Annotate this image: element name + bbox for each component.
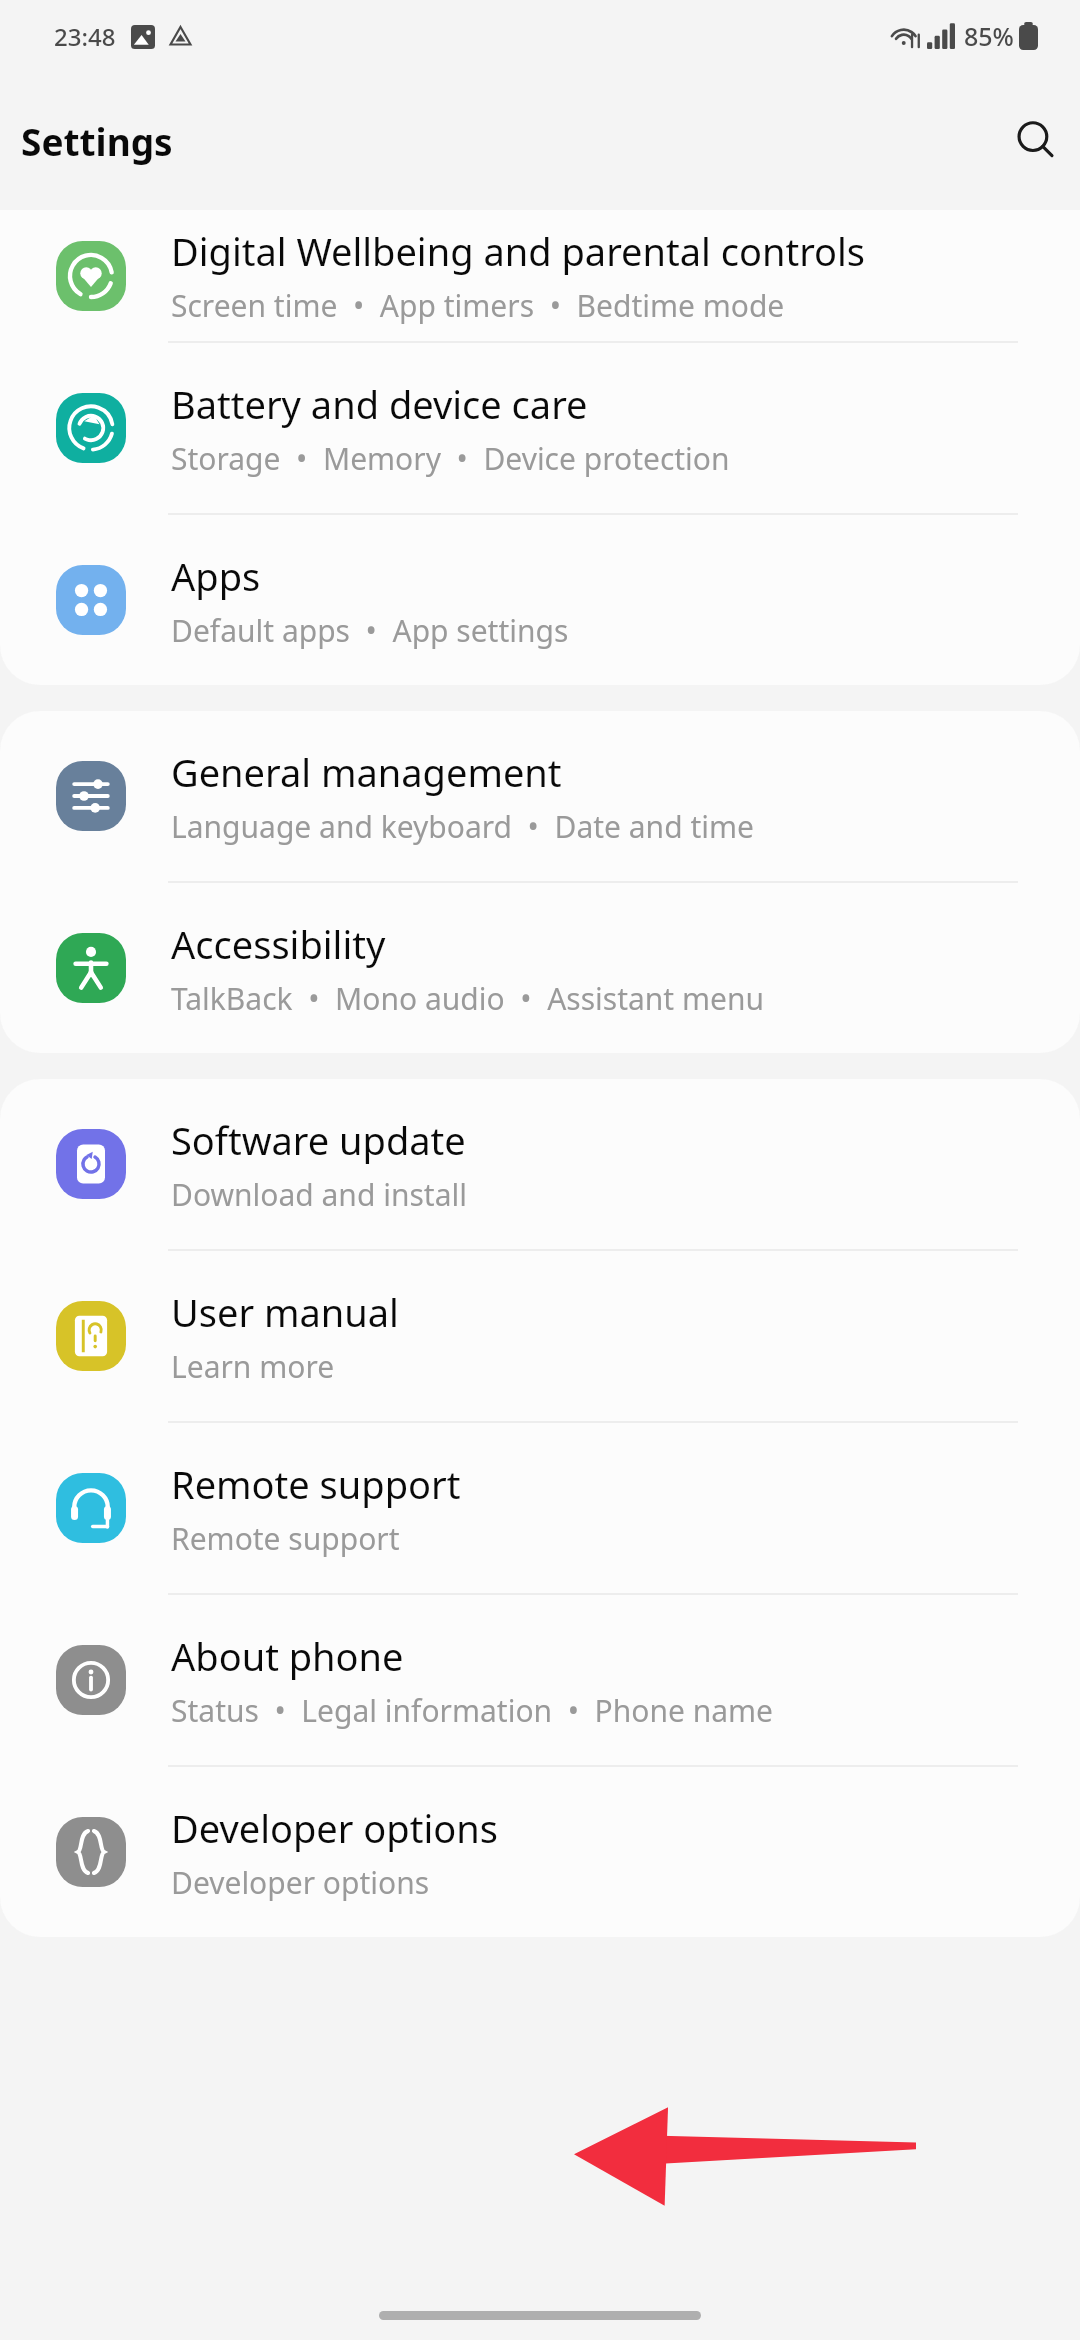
button[interactable]: About phone — [0, 1595, 1080, 1765]
button[interactable]: Battery and device care — [0, 343, 1080, 513]
staticText: Accessibility — [171, 918, 386, 970]
button[interactable]: Remote support — [0, 1423, 1080, 1593]
staticText: User manual — [171, 1286, 399, 1338]
staticText: 85% — [964, 19, 1014, 53]
staticText: Settings — [21, 116, 173, 166]
staticText: Storage • Memory • Device protection — [171, 438, 730, 479]
staticText: Learn more — [171, 1346, 335, 1387]
staticText: Developer options — [171, 1802, 498, 1854]
button[interactable]: Digital Wellbeing and parental controls — [0, 210, 1080, 341]
staticText: Download and install — [171, 1174, 467, 1215]
staticText: Apps — [171, 550, 261, 602]
button[interactable]: Developer options — [0, 1767, 1080, 1937]
button[interactable]: User manual — [0, 1251, 1080, 1421]
staticText: Language and keyboard • Date and time — [171, 806, 754, 847]
staticText: Battery and device care — [171, 378, 588, 430]
button[interactable]: Software update — [0, 1079, 1080, 1249]
staticText: TalkBack • Mono audio • Assistant menu — [171, 978, 765, 1019]
staticText: 23:48 — [54, 20, 116, 53]
button[interactable]: Search — [1006, 111, 1066, 171]
button[interactable]: Apps — [0, 515, 1080, 685]
staticText: Screen time • App timers • Bedtime mode — [171, 285, 785, 326]
staticText: General management — [171, 746, 562, 798]
staticText: Remote support — [171, 1458, 461, 1510]
staticText: About phone — [171, 1630, 404, 1682]
staticText: Software update — [171, 1114, 466, 1166]
staticText: Default apps • App settings — [171, 610, 569, 651]
staticText: Status • Legal information • Phone name — [171, 1690, 774, 1731]
staticText: Developer options — [171, 1862, 430, 1903]
button[interactable]: Accessibility — [0, 883, 1080, 1053]
staticText: Digital Wellbeing and parental controls — [171, 225, 866, 277]
staticText: Remote support — [171, 1518, 400, 1559]
button[interactable]: General management — [0, 711, 1080, 881]
